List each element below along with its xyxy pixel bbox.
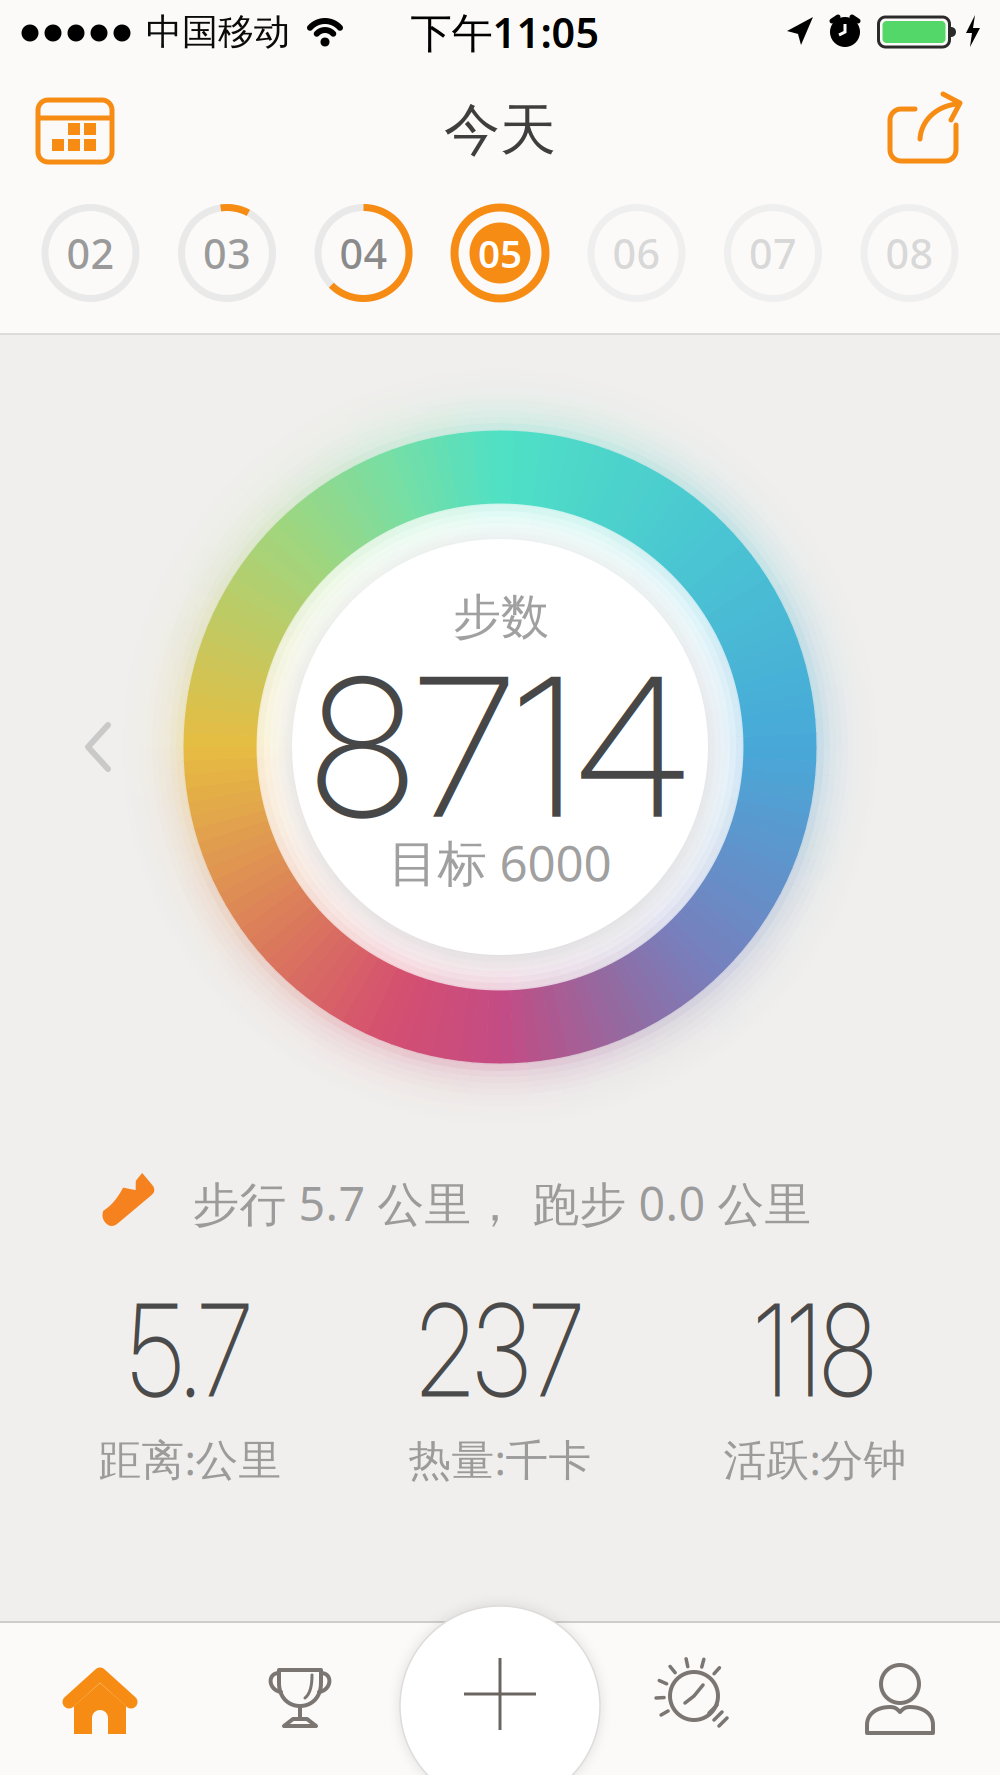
staticText: 步行 5.7 公里， 跑步 0.0 公里 [192,1172,811,1234]
staticText: 08 [885,226,933,280]
staticText: 步数 [453,587,549,646]
staticText: 03 [203,226,251,280]
staticText: 中国移动 [146,10,290,54]
button[interactable]: Day 02 [35,198,145,308]
staticText: 下午11:05 [410,5,599,59]
button[interactable]: Profile [805,1625,995,1775]
staticText: 热量:千卡 [408,1431,591,1487]
button[interactable]: Home [5,1625,195,1775]
button[interactable]: Tips [605,1625,795,1775]
staticText: 237 [396,1273,603,1427]
staticText: 5.7 [113,1273,266,1427]
staticText: 118 [739,1273,890,1427]
staticText: 02 [66,226,114,280]
button[interactable]: Day 06 [581,198,691,308]
staticText: 今天 [444,96,556,164]
staticText: 07 [749,226,797,280]
staticText: 06 [612,226,660,280]
button[interactable]: Add [400,1606,600,1775]
button[interactable]: Day 08 [854,198,964,308]
button[interactable]: Day 03 [172,198,282,308]
staticText: 目标 6000 [388,829,611,895]
button[interactable]: Day 04 [308,198,418,308]
staticText: 距离:公里 [98,1431,281,1487]
button[interactable]: Previous day [0,0,1000,1775]
button[interactable]: Day 05 [445,198,555,308]
button[interactable]: Achievements [205,1625,395,1775]
button[interactable]: Day 07 [718,198,828,308]
staticText: 05 [478,227,522,279]
button[interactable]: Share [870,79,980,189]
button[interactable]: Calendar [20,76,130,186]
staticText: 04 [339,226,387,280]
staticText: 8714 [310,631,689,863]
staticText: 活跃:分钟 [723,1431,906,1487]
